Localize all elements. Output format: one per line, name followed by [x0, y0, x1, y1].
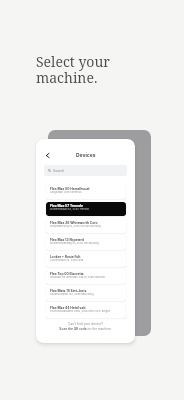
- staticText: Poortenstraatbaken 2235, 2028 Hetel op d…: [50, 310, 111, 313]
- staticText: Schimmelmanweg 45, 2030 Nel van Berg: [50, 242, 99, 245]
- staticText: Locker + Rosie Fult: [50, 255, 81, 259]
- staticText: Generaas De Whitelaan 4/BLW, 2085 Elacre…: [50, 276, 105, 279]
- staticText: Schimmelbaan 54, 2020 Tremele: [50, 208, 90, 211]
- staticText: Devices: [76, 152, 96, 158]
- staticText: Search: [53, 169, 65, 173]
- staticText: Flex Max 57 Tremele: [50, 204, 83, 208]
- staticText: Flex Top 00 Elacretia: [50, 272, 84, 276]
- button[interactable]: Flex Max 57 Tremele: [46, 202, 126, 216]
- staticText: Goudenlustpun 142, 2098 Sant-Wing: [50, 293, 94, 296]
- staticText: Flex Mats 15 Sint-Joris: [50, 289, 87, 293]
- button[interactable]: Flex Max 50 Hemelhuuel: [46, 185, 126, 199]
- button[interactable]: Flex Mats 15 Sint-Joris: [46, 287, 126, 301]
- staticText: Langstraat 2019 streefhuu: [50, 191, 82, 194]
- button[interactable]: Flex Max 44 Hetel vab: [46, 304, 126, 318]
- button[interactable]: Flex Max 36 Whiteworth Coro: [46, 219, 126, 233]
- button[interactable]: Search: [44, 165, 127, 176]
- button[interactable]: Back: [42, 150, 53, 161]
- staticText: Leunenstraat 20, 2025 Fulta: [50, 259, 84, 262]
- button[interactable]: Locker + Rosie Fult: [46, 253, 126, 267]
- staticText: Flex Max 50 Hemelhuuel: [50, 187, 90, 191]
- staticText: Pompwaterweg 34, 2030 Nel van den Berg: [50, 225, 101, 228]
- staticText: Flex Max 36 Whiteworth Coro: [50, 221, 98, 225]
- staticText: Select your machine.: [36, 52, 110, 87]
- button[interactable]: Flex Top 00 Elacretia: [46, 270, 126, 284]
- staticText: Can't find your device? Scan the QR code…: [36, 322, 135, 330]
- staticText: Flex Max 13 Rijpeterd: [50, 238, 84, 242]
- button[interactable]: Flex Max 13 Rijpeterd: [46, 236, 126, 250]
- staticText: Flex Max 44 Hetel vab: [50, 306, 86, 310]
